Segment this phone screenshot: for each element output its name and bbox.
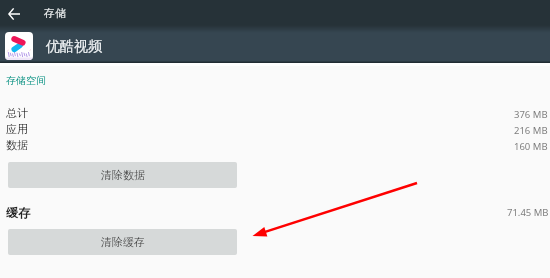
button[interactable]: 清除数据: [8, 162, 237, 188]
staticText: 缓存: [6, 205, 30, 220]
staticText: 清除数据: [101, 168, 145, 182]
staticText: 优酷视频: [46, 38, 102, 56]
staticText: 数据: [6, 138, 28, 152]
button[interactable]: [0, 27, 550, 63]
staticText: 376 MB: [514, 108, 548, 121]
staticText: 160 MB: [514, 140, 548, 153]
staticText: 存储: [44, 6, 66, 20]
staticText: 应用: [6, 122, 28, 136]
staticText: 216 MB: [514, 124, 548, 137]
staticText: 71.45 MB: [507, 206, 549, 219]
staticText: 存储空间: [6, 74, 46, 87]
staticText: 清除缓存: [101, 235, 145, 249]
button[interactable]: Back: [1, 1, 26, 26]
staticText: 总计: [6, 106, 28, 120]
button[interactable]: 清除缓存: [8, 229, 237, 255]
